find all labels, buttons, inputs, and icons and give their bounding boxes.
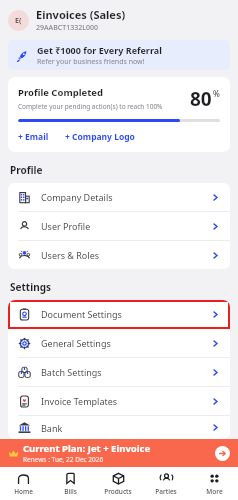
staticText: Home <box>14 487 33 496</box>
staticText: + Email <box>18 131 49 143</box>
staticText: 29AABCT1332L000 <box>36 23 98 33</box>
button[interactable]: Bills <box>47 467 94 500</box>
button[interactable]: Document Settings <box>8 300 230 329</box>
other: Open plan details <box>215 446 230 461</box>
button[interactable]: Parties <box>142 467 190 500</box>
staticText: User Profile <box>41 220 211 232</box>
staticText: Document Settings <box>41 308 211 320</box>
staticText: Profile Completed <box>18 86 103 99</box>
button[interactable]: Company Details <box>8 183 230 212</box>
staticText: Products <box>104 487 132 496</box>
staticText: Current Plan: Jet + Einvoice <box>23 442 151 455</box>
button[interactable]: Invoice Templates <box>8 387 230 416</box>
button[interactable]: General Settings <box>8 329 230 358</box>
staticText: Complete your pending action(s) to reach… <box>18 102 163 111</box>
staticText: Users & Roles <box>41 249 211 261</box>
staticText: Invoice Templates <box>41 395 211 407</box>
staticText: Profile <box>10 163 43 177</box>
button[interactable]: Batch Settings <box>8 358 230 387</box>
staticText: Parties <box>155 487 177 496</box>
staticText: Bills <box>64 487 77 496</box>
staticText: General Settings <box>41 337 211 349</box>
staticText: Bank <box>41 422 211 434</box>
button[interactable]: User Profile <box>8 212 230 241</box>
staticText: Company Details <box>41 191 211 203</box>
button[interactable]: Get ₹1000 for Every Referral <box>8 40 230 70</box>
button[interactable]: Bank <box>8 416 230 439</box>
staticText: 80 <box>190 86 212 112</box>
staticText: Get ₹1000 for Every Referral <box>37 44 162 56</box>
staticText: + Company Logo <box>65 131 135 143</box>
staticText: Settings <box>10 280 51 294</box>
button[interactable]: Home <box>0 467 47 500</box>
staticText: More <box>206 487 223 496</box>
button[interactable]: + Email <box>18 131 49 143</box>
button[interactable]: Current Plan: Jet + Einvoice <box>8 439 230 467</box>
staticText: Batch Settings <box>41 366 211 378</box>
staticText: E( <box>15 16 22 26</box>
staticText: Renews : Tue, 22 Dec 2026 <box>23 455 104 464</box>
button[interactable]: More <box>190 467 238 500</box>
button[interactable]: Users & Roles <box>8 241 230 269</box>
staticText: Einvoices (Sales) <box>36 7 126 22</box>
staticText: Refer your business friends now! <box>37 57 145 67</box>
button[interactable]: Products <box>94 467 142 500</box>
staticText: % <box>213 88 220 99</box>
button[interactable]: + Company Logo <box>65 131 135 143</box>
